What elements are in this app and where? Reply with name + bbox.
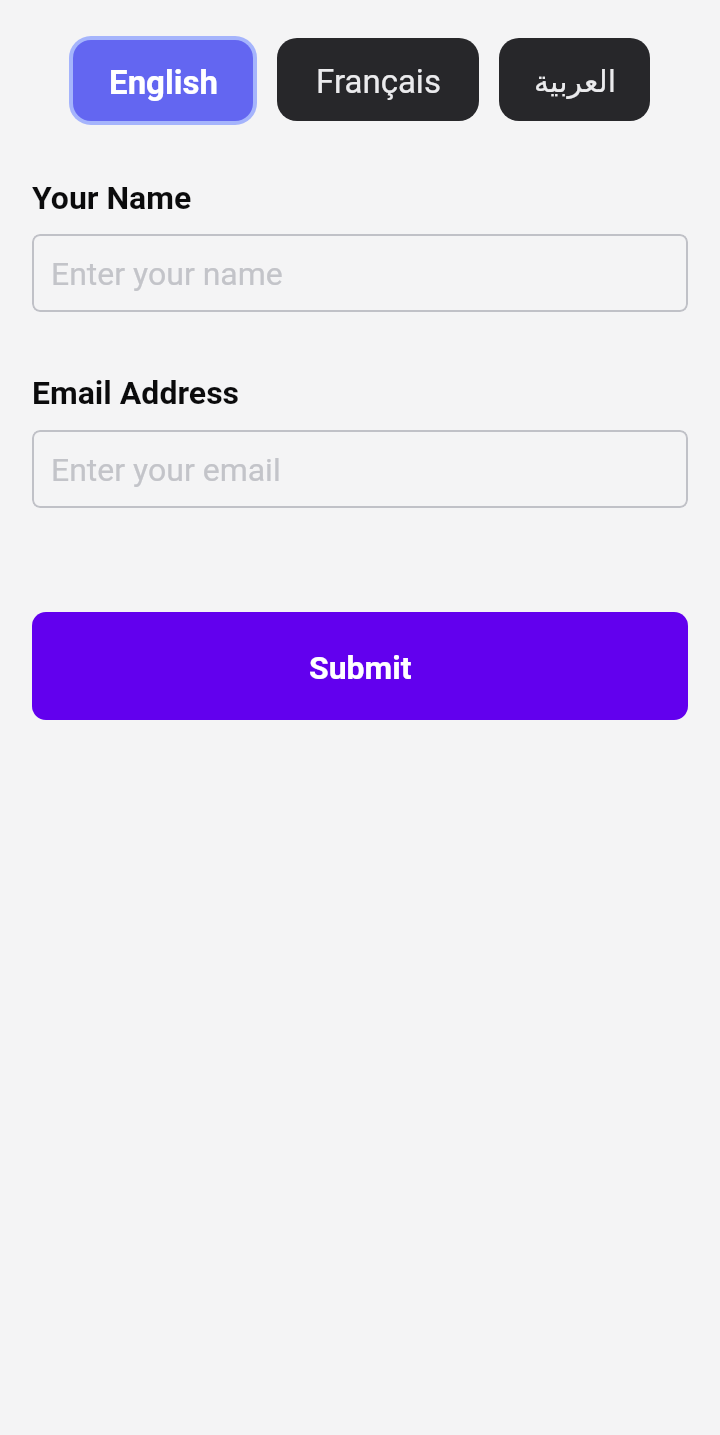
button[interactable]: Enter your email	[32, 430, 688, 508]
staticText: English	[109, 63, 218, 102]
staticText: Email Address	[32, 374, 240, 412]
staticText: Enter your name	[51, 255, 283, 293]
button[interactable]: Français	[277, 38, 479, 121]
staticText: Enter your email	[51, 451, 281, 489]
button[interactable]: العربية	[499, 38, 650, 121]
staticText: Français	[316, 62, 441, 101]
button[interactable]: Submit	[32, 612, 688, 720]
button[interactable]: Enter your name	[32, 234, 688, 312]
staticText: Your Name	[32, 179, 192, 217]
staticText: العربية	[534, 64, 616, 99]
staticText: Submit	[309, 649, 412, 687]
button[interactable]: English	[69, 36, 257, 125]
